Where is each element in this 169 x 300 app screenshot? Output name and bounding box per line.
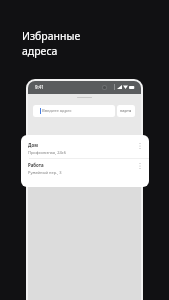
staticText: карта	[120, 108, 132, 114]
staticText: Дом	[28, 142, 38, 148]
button[interactable]: More options	[135, 161, 144, 170]
staticText: 9:41	[35, 84, 44, 90]
staticText: Введите адрес	[42, 108, 72, 114]
button[interactable]: Введите адрес	[33, 105, 115, 117]
button[interactable]: Дом	[21, 135, 149, 158]
staticText: адреса	[22, 44, 58, 58]
staticText: Избранные	[22, 29, 81, 43]
button[interactable]: More options	[135, 141, 144, 150]
staticText: Ружейный пер., 3	[28, 170, 62, 175]
staticText: Работа	[28, 162, 44, 168]
button[interactable]: Работа	[21, 159, 149, 187]
staticText: Профсоюзная, 24с6	[28, 150, 67, 155]
button[interactable]: карта	[117, 105, 135, 117]
